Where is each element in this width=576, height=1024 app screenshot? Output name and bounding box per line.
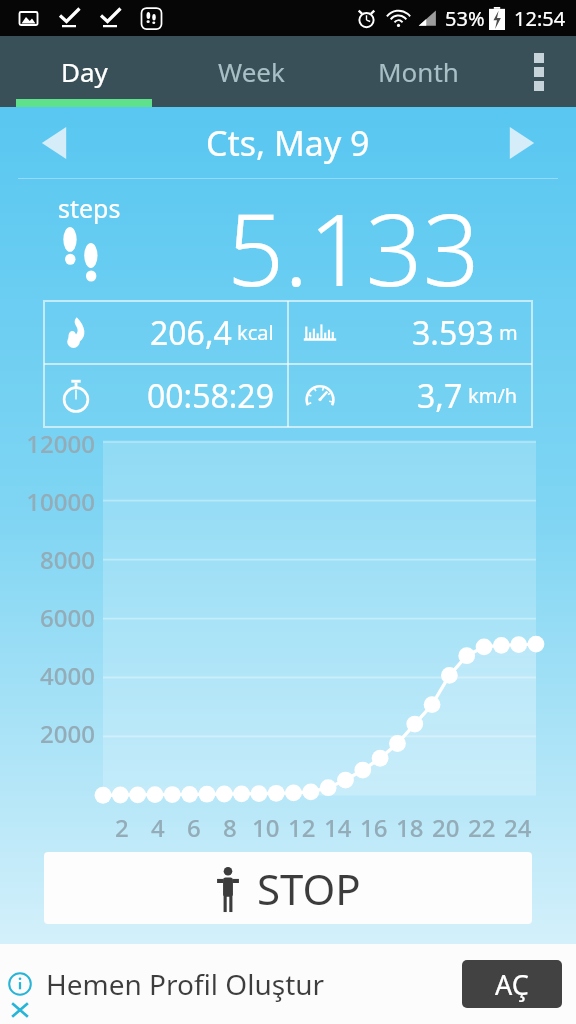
staticText: 10000 <box>26 485 95 518</box>
button[interactable]: Week <box>168 36 335 107</box>
staticText: 6 <box>187 811 201 844</box>
staticText: m <box>499 319 518 346</box>
staticText: Cts, May 9 <box>206 120 370 166</box>
staticText: Day <box>61 54 108 89</box>
staticText: km/h <box>468 382 518 409</box>
staticText: 4 <box>151 811 165 844</box>
button[interactable]: Month <box>335 36 502 107</box>
staticText: 8 <box>223 811 237 844</box>
staticText: 2 <box>115 811 129 844</box>
staticText: 206,4 <box>150 311 232 355</box>
button[interactable]: Day <box>0 36 168 107</box>
staticText: 12:54 <box>514 5 566 32</box>
staticText: steps <box>58 191 121 225</box>
staticText: 20 <box>432 811 460 844</box>
staticText: 4000 <box>40 659 95 692</box>
staticText: 3.593 <box>412 311 494 355</box>
button[interactable]: Average speed <box>288 364 532 427</box>
other: Average speed <box>302 378 338 414</box>
staticText: STOP <box>257 860 361 917</box>
other: Distance <box>302 315 338 351</box>
button[interactable]: Duration <box>44 364 288 427</box>
other: Calories burned <box>58 315 94 351</box>
staticText: 14 <box>324 811 352 844</box>
staticText: 8000 <box>40 543 95 576</box>
staticText: 2000 <box>40 717 95 750</box>
button[interactable]: Next day <box>490 111 554 175</box>
staticText: 18 <box>396 811 424 844</box>
button[interactable]: Calories burned <box>44 301 288 364</box>
staticText: 5.133 <box>227 179 480 301</box>
staticText: Week <box>218 54 285 89</box>
button[interactable]: Previous day <box>22 111 86 175</box>
staticText: 24 <box>504 811 532 844</box>
button[interactable]: Distance <box>288 301 532 364</box>
staticText: 16 <box>360 811 388 844</box>
other: Duration <box>58 378 94 414</box>
staticText: 12 <box>288 811 316 844</box>
button[interactable]: Close advertisement <box>6 996 34 1024</box>
staticText: Month <box>378 54 459 89</box>
staticText: 12000 <box>26 427 95 460</box>
staticText: kcal <box>237 319 274 346</box>
staticText: 53% <box>445 5 485 32</box>
staticText: 3,7 <box>417 374 463 418</box>
staticText: 00:58:29 <box>147 374 274 418</box>
button[interactable]: More options <box>502 36 576 107</box>
staticText: Hemen Profil Oluştur <box>46 965 325 1003</box>
staticText: 22 <box>468 811 496 844</box>
button[interactable]: AÇ <box>462 960 562 1008</box>
staticText: AÇ <box>495 966 529 1003</box>
button[interactable]: STOP <box>44 852 532 924</box>
staticText: 10 <box>252 811 280 844</box>
staticText: 6000 <box>40 601 95 634</box>
